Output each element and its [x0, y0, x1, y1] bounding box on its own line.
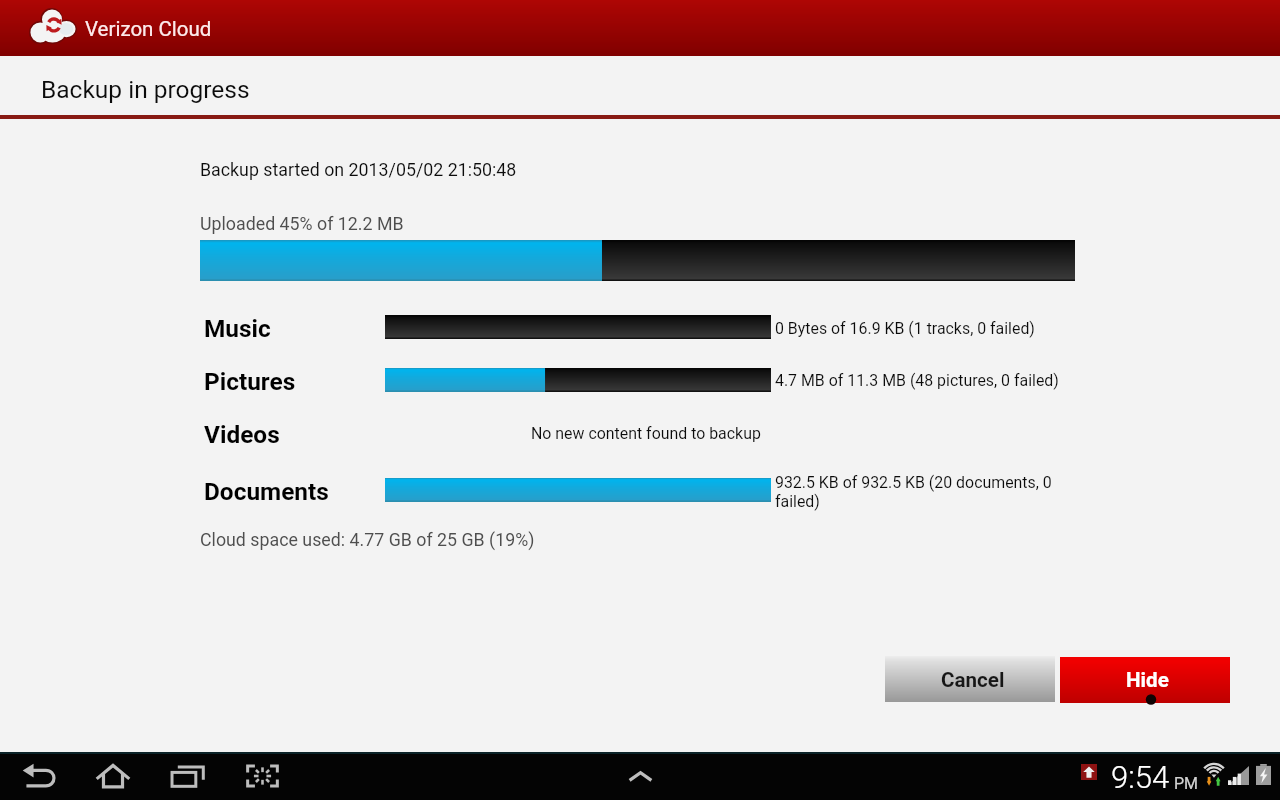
- staticText: Uploaded 45% of 12.2 MB: [200, 213, 404, 234]
- button[interactable]: Cancel: [885, 656, 1055, 702]
- staticText: 0 Bytes of 16.9 KB (1 tracks, 0 failed): [775, 319, 1059, 338]
- staticText: Cloud space used: 4.77 GB of 25 GB (19%): [200, 529, 535, 550]
- staticText: Music: [204, 314, 271, 343]
- button[interactable]: Expand notifications: [610, 752, 670, 800]
- button[interactable]: Recent apps: [151, 752, 225, 800]
- staticText: 4.7 MB of 11.3 MB (48 pictures, 0 failed…: [775, 371, 1059, 390]
- staticText: 9:54: [1111, 759, 1170, 795]
- staticText: Backup in progress: [41, 75, 250, 104]
- staticText: Videos: [204, 420, 280, 449]
- staticText: Pictures: [204, 367, 296, 396]
- staticText: 932.5 KB of 932.5 KB (20 documents, 0 fa…: [775, 473, 1059, 511]
- button[interactable]: Hide: [1060, 657, 1230, 703]
- staticText: Backup started on 2013/05/02 21:50:48: [200, 159, 517, 180]
- staticText: No new content found to backup: [531, 424, 761, 443]
- button[interactable]: Home: [76, 752, 150, 800]
- staticText: Verizon Cloud: [85, 17, 212, 41]
- staticText: Hide: [1126, 668, 1169, 692]
- staticText: Cancel: [941, 668, 1005, 692]
- staticText: PM: [1174, 774, 1199, 793]
- button[interactable]: Back: [2, 752, 76, 800]
- staticText: Documents: [204, 477, 329, 506]
- button[interactable]: Screenshot: [225, 752, 299, 800]
